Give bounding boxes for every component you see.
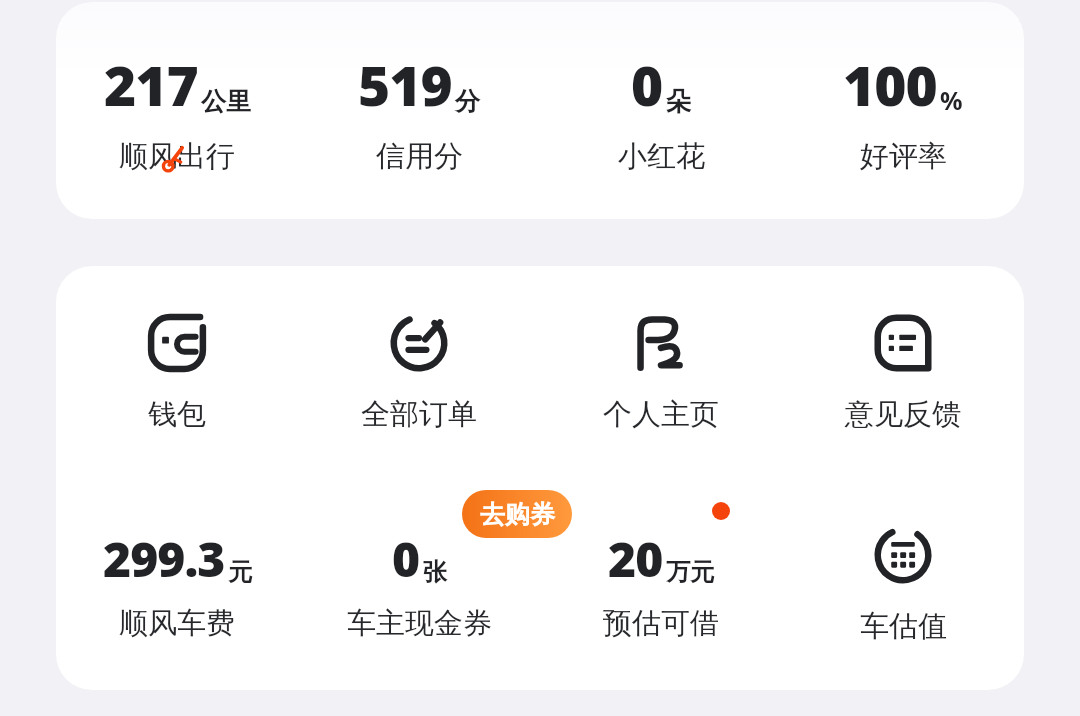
button[interactable]: 100 xyxy=(782,2,1024,219)
button[interactable]: 钱包 xyxy=(56,266,298,478)
staticText: 小红花 xyxy=(618,138,705,175)
staticText: 0 xyxy=(631,47,663,122)
other: 车估值 xyxy=(872,524,934,586)
staticText: 公里 xyxy=(201,86,251,117)
other: 个人主页 xyxy=(630,312,692,374)
button[interactable]: 个人主页 xyxy=(540,266,782,478)
staticText: 分 xyxy=(455,86,480,117)
staticText: 顺风出行 xyxy=(119,138,235,175)
staticText: 车估值 xyxy=(860,608,947,645)
button[interactable]: 意见反馈 xyxy=(782,266,1024,478)
staticText: 信用分 xyxy=(376,138,463,175)
staticText: % xyxy=(940,83,963,117)
button[interactable]: 299.3 xyxy=(56,478,298,690)
staticText: 车主现金券 xyxy=(347,605,492,642)
button[interactable]: 去购券 xyxy=(462,490,572,538)
staticText: 299.3 xyxy=(103,526,225,591)
staticText: 元 xyxy=(228,557,252,587)
other: 意见反馈 xyxy=(872,312,934,374)
button[interactable]: 0 xyxy=(540,2,782,219)
staticText: 个人主页 xyxy=(603,396,719,433)
staticText: 20 xyxy=(608,526,663,591)
staticText: 朵 xyxy=(666,86,691,117)
staticText: 0 xyxy=(392,526,420,591)
other: 钱包 xyxy=(146,312,208,374)
staticText: 去购券 xyxy=(480,499,555,530)
staticText: 全部订单 xyxy=(361,396,477,433)
button[interactable]: 0 xyxy=(298,478,540,690)
staticText: 意见反馈 xyxy=(845,396,961,433)
button[interactable]: 20 xyxy=(540,478,782,690)
staticText: 519 xyxy=(358,47,452,122)
staticText: 顺风车费 xyxy=(119,605,235,642)
staticText: 预估可借 xyxy=(603,605,719,642)
staticText: 100 xyxy=(843,47,937,122)
button[interactable]: 车估值 xyxy=(782,478,1024,690)
button[interactable]: 519 xyxy=(298,2,540,219)
staticText: 好评率 xyxy=(860,138,947,175)
other: 全部订单 xyxy=(388,312,450,374)
staticText: 217 xyxy=(104,47,198,122)
staticText: 张 xyxy=(423,557,447,587)
button[interactable]: 217 xyxy=(56,2,298,219)
staticText: 钱包 xyxy=(148,396,206,433)
button[interactable]: 全部订单 xyxy=(298,266,540,478)
staticText: 万元 xyxy=(666,557,714,587)
